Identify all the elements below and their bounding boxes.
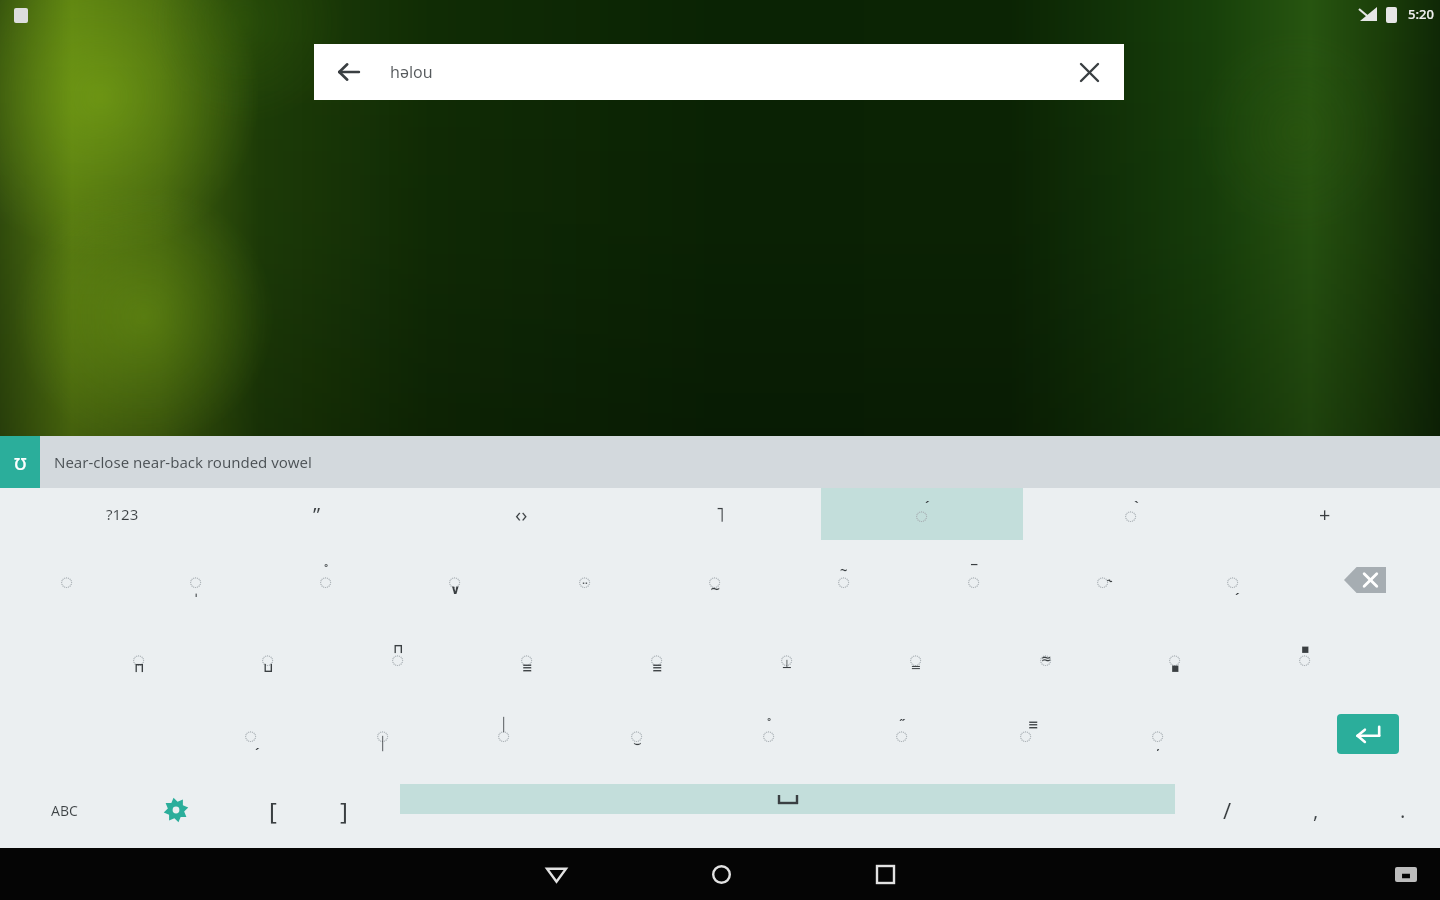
button[interactable]: Diacritic key	[881, 620, 950, 696]
staticText: ◌	[895, 719, 909, 749]
button[interactable]: Recent apps	[859, 848, 911, 900]
staticText: ◌	[762, 719, 776, 749]
staticText: ◌	[630, 719, 644, 749]
button[interactable]: Current symbol	[0, 436, 40, 488]
staticText: ┴	[783, 660, 791, 675]
button[interactable]: Diacritic key	[1011, 620, 1080, 696]
staticText: ˋ	[1134, 497, 1139, 515]
button[interactable]: Home	[695, 848, 747, 900]
staticText: ◌	[1124, 499, 1138, 529]
staticText: ∼	[710, 581, 721, 596]
staticText: ◌	[1039, 643, 1053, 673]
staticText: ‹›	[515, 501, 528, 528]
button[interactable]: ”	[252, 488, 382, 540]
button[interactable]: Diacritic key	[1068, 540, 1137, 620]
staticText: ˝	[899, 715, 906, 733]
staticText: ?123	[106, 504, 139, 524]
staticText: ◌	[391, 643, 405, 673]
button[interactable]: Enter	[1325, 696, 1411, 772]
button[interactable]: Switch keyboard	[1386, 854, 1426, 894]
staticText: ≈	[1041, 651, 1052, 666]
button[interactable]: ,	[1267, 772, 1365, 848]
button[interactable]: Diacritic key	[939, 540, 1008, 620]
button[interactable]: ]	[302, 772, 386, 848]
staticText: /	[1223, 795, 1232, 825]
button[interactable]: Diacritic key	[161, 540, 230, 620]
button[interactable]: ?123	[43, 488, 201, 540]
staticText: ˊ	[925, 497, 930, 515]
button[interactable]: Diacritic key	[1270, 620, 1339, 696]
staticText: 5:20	[1408, 5, 1434, 23]
button[interactable]: Diacritic key	[216, 696, 285, 772]
staticText: [	[269, 794, 277, 827]
button[interactable]: Diacritic key	[1198, 540, 1267, 620]
button[interactable]: Diacritic key	[1140, 620, 1209, 696]
staticText: ¨	[581, 578, 589, 596]
staticText: ]	[340, 794, 348, 827]
staticText: ⌣	[633, 737, 642, 750]
button[interactable]: Diacritic key	[752, 620, 821, 696]
button[interactable]: Backspace	[1325, 540, 1404, 620]
button[interactable]: ˥	[655, 488, 785, 540]
button[interactable]: ‹›	[446, 488, 597, 540]
button[interactable]: Clear text	[1066, 49, 1112, 95]
staticText: ═	[912, 660, 920, 675]
button[interactable]: Diacritic key	[104, 620, 173, 696]
staticText: ”	[313, 501, 321, 528]
button[interactable]: Diacritic key	[867, 696, 936, 772]
button[interactable]: Back	[326, 49, 372, 95]
button[interactable]: +	[1274, 488, 1375, 540]
button[interactable]: Space	[400, 784, 1175, 814]
button[interactable]: [	[230, 772, 316, 848]
staticText: ◌	[780, 643, 794, 673]
button[interactable]: Settings	[122, 772, 230, 848]
staticText: ◌	[319, 565, 333, 595]
staticText: ◌	[1168, 643, 1182, 673]
button[interactable]: Diacritic key	[233, 620, 302, 696]
button[interactable]: Diacritic key	[420, 540, 489, 620]
button[interactable]: Near-close near-back rounded vowel	[54, 452, 312, 472]
staticText: .	[1400, 797, 1406, 824]
staticText: ◌	[448, 565, 462, 595]
button[interactable]: Diacritic key	[492, 620, 561, 696]
button[interactable]: Diacritic key	[1123, 696, 1192, 772]
staticText: ◌	[244, 719, 258, 749]
button[interactable]: Diacritic key	[991, 696, 1060, 772]
staticText: ▪	[1171, 660, 1180, 675]
button[interactable]: Diacritic key	[809, 540, 878, 620]
staticText: ◌	[1019, 719, 1033, 749]
staticText: │	[500, 717, 508, 732]
button[interactable]: .	[1365, 772, 1440, 848]
button[interactable]: Diacritic key	[348, 696, 417, 772]
staticText: ◌	[650, 643, 664, 673]
staticText: │	[379, 736, 387, 751]
button[interactable]: Diacritic key	[363, 620, 432, 696]
staticText: ◌	[1298, 643, 1312, 673]
button[interactable]: ABC	[7, 772, 122, 848]
staticText: ˏ	[255, 733, 260, 751]
button[interactable]: /	[1188, 772, 1267, 848]
staticText: ◌	[967, 565, 981, 595]
button[interactable]: Diacritic key	[602, 696, 671, 772]
button[interactable]: Diacritic key	[1073, 488, 1188, 540]
button[interactable]: Diacritic key	[291, 540, 360, 620]
staticText: ◌	[708, 565, 722, 595]
staticText: ,	[1313, 797, 1319, 824]
staticText: ◌	[1096, 565, 1110, 595]
staticText: ⊓	[134, 660, 145, 675]
staticText: ˏ	[1235, 578, 1240, 596]
staticText: ˚	[767, 715, 772, 733]
staticText: ¯	[971, 561, 978, 579]
staticText: ◌	[578, 565, 592, 595]
button[interactable]: Diacritic key	[469, 696, 538, 772]
staticText: ˥	[716, 501, 725, 528]
staticText: ◌	[909, 643, 923, 673]
button[interactable]: Back	[530, 848, 582, 900]
button[interactable]: Diacritic key	[680, 540, 749, 620]
button[interactable]: Diacritic key	[734, 696, 803, 772]
button[interactable]: Diacritic key	[550, 540, 619, 620]
staticText: ◌	[520, 643, 534, 673]
button[interactable]: Diacritic key	[622, 620, 691, 696]
